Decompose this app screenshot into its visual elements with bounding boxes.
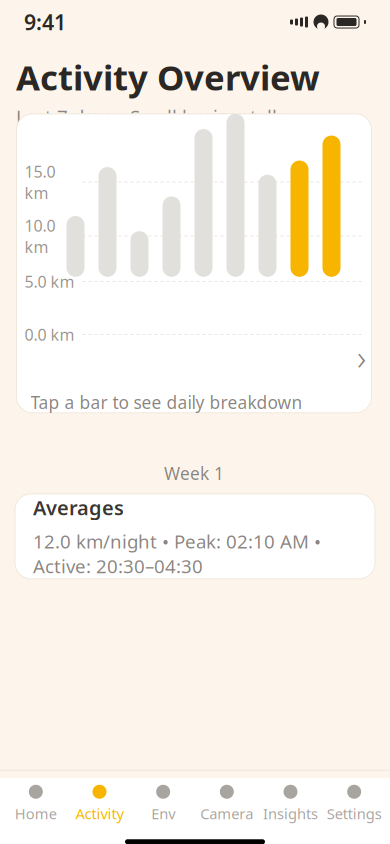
staticText: 15.0 km	[24, 161, 55, 203]
button[interactable]: Day 2 bar	[98, 167, 116, 277]
button[interactable]: Day 8 bar	[290, 160, 308, 277]
button[interactable]: Day 3 bar	[130, 231, 148, 277]
staticText: 12.0 km/night • Peak: 02:10 AM • Active:…	[33, 529, 321, 578]
staticText: Camera	[200, 804, 253, 823]
staticText: 0.0 km	[24, 324, 74, 345]
button[interactable]: Home	[4, 777, 68, 831]
button[interactable]: Activity	[68, 777, 131, 831]
staticText: 10.0 km	[24, 215, 55, 257]
button[interactable]: Day 7 bar	[258, 175, 276, 277]
staticText: Tap a bar to see daily breakdown	[30, 391, 302, 414]
button[interactable]: Settings	[322, 777, 386, 831]
button[interactable]: Day 5 bar	[194, 129, 212, 277]
staticText: Home	[15, 804, 57, 823]
staticText: Last 7 days • Scroll horizontally	[16, 104, 287, 129]
staticText: Activity	[75, 804, 123, 823]
staticText: Env	[151, 804, 175, 823]
staticText: 9:41	[24, 8, 66, 36]
button[interactable]: Day 1 bar	[66, 216, 84, 277]
staticText: Averages	[33, 494, 124, 521]
button[interactable]: Env	[131, 777, 195, 831]
button[interactable]: Scroll to next week	[349, 342, 373, 372]
staticText: ›	[357, 334, 366, 380]
button[interactable]: Day 9 bar	[322, 136, 340, 277]
button[interactable]: Day 6 bar	[226, 114, 244, 277]
staticText: Activity Overview	[16, 54, 320, 100]
button[interactable]: Day 4 bar	[162, 196, 180, 277]
button[interactable]: Insights	[259, 777, 322, 831]
staticText: Week 1	[164, 462, 224, 485]
staticText: Settings	[327, 804, 382, 823]
staticText: Insights	[263, 804, 318, 823]
button[interactable]: Camera	[195, 777, 259, 831]
staticText: 5.0 km	[24, 271, 74, 292]
